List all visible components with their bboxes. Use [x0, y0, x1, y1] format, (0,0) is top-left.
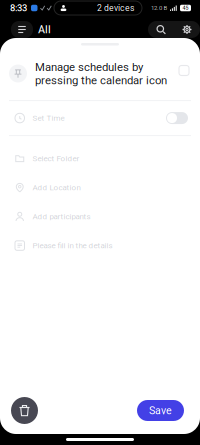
staticText: All	[38, 23, 51, 36]
staticText: Save	[149, 404, 172, 417]
staticText: pressing the calendar icon	[35, 74, 167, 87]
staticText: Select Folder	[32, 154, 79, 163]
button[interactable]: Menu	[0, 21, 33, 38]
staticText: 8:33	[10, 2, 27, 13]
staticText: Please fill in the details	[32, 241, 112, 250]
staticText: 45	[182, 5, 188, 11]
staticText: 12.0	[151, 4, 162, 11]
button[interactable]: Set Time	[166, 112, 188, 124]
staticText: Add Location	[32, 183, 80, 192]
staticText: Set Time	[32, 113, 64, 123]
staticText: B	[163, 4, 167, 11]
button[interactable]: Save	[137, 400, 184, 421]
staticText: Manage schedules by	[35, 60, 143, 74]
button[interactable]: Delete	[11, 397, 38, 424]
button[interactable]: Add Location	[0, 173, 200, 202]
button[interactable]: Search	[148, 21, 174, 38]
button[interactable]: Add participants	[0, 202, 200, 231]
button[interactable]: Select Folder	[0, 144, 200, 173]
button[interactable]: Settings	[174, 21, 200, 38]
button[interactable]: Please fill in the details	[0, 231, 200, 260]
button[interactable]: Mark complete	[179, 60, 200, 75]
staticText: Add participants	[32, 212, 90, 221]
staticText: 2 devices	[97, 3, 134, 13]
